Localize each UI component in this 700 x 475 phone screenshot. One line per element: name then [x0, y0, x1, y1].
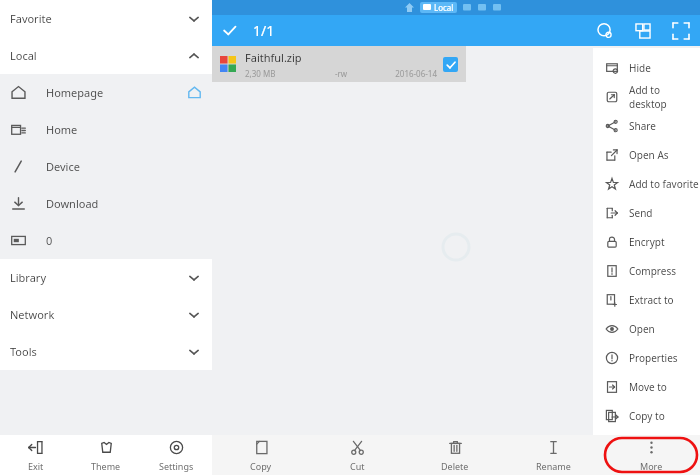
staticText: Network	[10, 307, 186, 322]
button[interactable]: Open As	[593, 140, 700, 169]
staticText: Copy to	[629, 409, 665, 423]
staticText: Open As	[629, 148, 669, 162]
staticText: Exit	[28, 460, 44, 472]
staticText: Rename	[536, 460, 571, 472]
staticText: More	[640, 460, 663, 472]
button[interactable]: Home	[0, 111, 212, 148]
button[interactable]: Compress	[593, 256, 700, 285]
staticText: Encrypt	[629, 235, 665, 249]
staticText: 2016-06-14	[373, 68, 437, 79]
button[interactable]: More	[602, 435, 700, 475]
staticText: Favorite	[10, 11, 186, 26]
staticText: Device	[46, 159, 202, 174]
button[interactable]: Favorite	[0, 0, 212, 37]
button[interactable]: Open	[593, 314, 700, 343]
staticText: Extract to	[629, 293, 674, 307]
button[interactable]: Encrypt	[593, 227, 700, 256]
staticText: 1/1	[253, 21, 275, 40]
button[interactable]: Network	[0, 296, 212, 333]
staticText: Hide	[629, 61, 651, 75]
staticText: Open	[629, 322, 655, 336]
button[interactable]: Download	[0, 185, 212, 222]
button[interactable]: Tools	[0, 333, 212, 370]
button[interactable]: Copy	[212, 435, 309, 475]
staticText: Homepage	[46, 85, 187, 100]
button[interactable]: Select all	[212, 15, 246, 46]
button[interactable]: Add to favorite	[593, 169, 700, 198]
staticText: Move to	[629, 380, 667, 394]
staticText: Compress	[629, 264, 677, 278]
staticText: Properties	[629, 351, 678, 365]
staticText: Theme	[91, 460, 121, 472]
staticText: 2,30 MB	[245, 68, 309, 79]
button[interactable]: Faithful.zip	[212, 46, 466, 82]
button[interactable]: Settings	[141, 435, 212, 475]
button[interactable]: Properties	[593, 343, 700, 372]
button[interactable]: Grid view	[624, 15, 662, 46]
button[interactable]: Selected	[443, 57, 458, 72]
staticText: Add to favorite	[629, 177, 699, 191]
button[interactable]: Exit	[0, 435, 70, 475]
staticText: Tools	[10, 344, 186, 359]
button[interactable]: 0	[0, 222, 212, 259]
button[interactable]: Move to	[593, 372, 700, 401]
button[interactable]: Theme	[70, 435, 141, 475]
button[interactable]: Send	[593, 198, 700, 227]
staticText: Cut	[350, 460, 365, 472]
button[interactable]: Copy to	[593, 401, 700, 430]
staticText: Settings	[159, 460, 194, 472]
staticText: Local	[10, 48, 186, 63]
button[interactable]: Hide	[593, 53, 700, 82]
staticText: Delete	[441, 460, 469, 472]
button[interactable]: Local	[0, 37, 212, 74]
staticText: Library	[10, 270, 186, 285]
button[interactable]: Select	[662, 15, 700, 46]
button[interactable]: Rename	[504, 435, 602, 475]
button[interactable]: Homepage	[0, 74, 212, 111]
button[interactable]: Search	[586, 15, 624, 46]
button[interactable]: Library	[0, 259, 212, 296]
button[interactable]: Add to desktop	[593, 82, 700, 111]
button[interactable]: Share	[593, 111, 700, 140]
staticText: Add to desktop	[629, 83, 700, 111]
button[interactable]: Extract to	[593, 285, 700, 314]
staticText: Send	[629, 206, 653, 220]
staticText: -rw	[309, 68, 373, 79]
staticText: Copy	[250, 460, 272, 472]
button[interactable]: Device	[0, 148, 212, 185]
staticText: 0	[46, 233, 202, 248]
staticText: Share	[629, 119, 656, 133]
staticText: Faithful.zip	[245, 50, 302, 65]
staticText: Home	[46, 122, 202, 137]
button[interactable]: Delete	[406, 435, 504, 475]
button[interactable]: Cut	[309, 435, 406, 475]
staticText: Download	[46, 196, 202, 211]
staticText: Local	[434, 2, 454, 13]
